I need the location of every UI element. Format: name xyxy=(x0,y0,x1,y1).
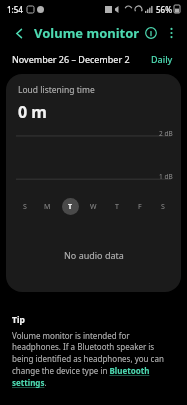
staticText: M xyxy=(44,202,51,212)
button[interactable]: T xyxy=(62,198,79,215)
staticText: 1 dB xyxy=(159,172,173,181)
button[interactable]: Daily xyxy=(149,51,175,67)
staticText: November 26 – December 2 xyxy=(12,53,130,65)
button[interactable]: W xyxy=(85,198,102,215)
staticText: T xyxy=(115,202,119,212)
staticText: 2 dB xyxy=(159,129,173,138)
staticText: 1:54 xyxy=(7,4,23,15)
button[interactable]: T xyxy=(108,198,125,215)
button[interactable]: Volume monitor is intended for headphone… xyxy=(12,330,177,389)
staticText: 56% xyxy=(156,4,172,15)
staticText: 0 m xyxy=(18,101,47,123)
button[interactable]: M xyxy=(39,198,56,215)
staticText: Loud listening time xyxy=(18,84,95,96)
button[interactable]: Information xyxy=(140,22,162,44)
button[interactable]: More options xyxy=(164,22,179,44)
staticText: No audio data xyxy=(64,249,124,261)
staticText: Tip xyxy=(12,314,25,326)
button[interactable]: Back xyxy=(8,22,30,44)
staticText: Daily xyxy=(151,53,173,65)
button[interactable]: S xyxy=(16,198,33,215)
staticText: T xyxy=(68,202,73,212)
staticText: W xyxy=(90,202,97,212)
staticText: S xyxy=(161,202,165,212)
button[interactable]: S xyxy=(154,198,171,215)
staticText: F xyxy=(138,202,142,212)
button[interactable]: F xyxy=(131,198,148,215)
staticText: Volume monitor xyxy=(34,24,140,42)
staticText: S xyxy=(23,202,27,212)
